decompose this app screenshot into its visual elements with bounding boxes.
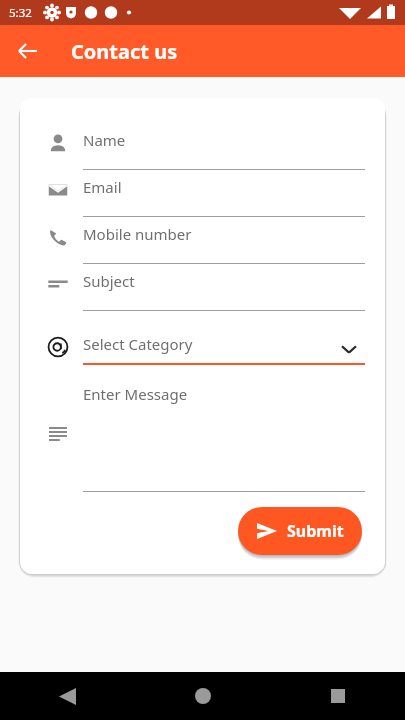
staticText: Contact us xyxy=(71,38,178,65)
other: Expand category xyxy=(340,340,358,358)
staticText: Name xyxy=(83,130,126,150)
button[interactable]: Select Category xyxy=(20,334,385,371)
staticText: Submit xyxy=(287,520,344,542)
button[interactable]: Email xyxy=(20,177,385,224)
button[interactable]: Name xyxy=(20,130,385,177)
staticText: Enter Message xyxy=(83,384,188,404)
staticText: Subject xyxy=(83,271,135,291)
staticText: Select Category xyxy=(83,334,193,354)
button[interactable]: Home xyxy=(135,672,270,720)
staticText: 5:32 xyxy=(9,5,32,21)
button[interactable]: Subject xyxy=(20,271,385,318)
button[interactable]: Submit xyxy=(238,507,362,555)
button[interactable]: Back xyxy=(8,31,48,71)
staticText: Email xyxy=(83,177,122,197)
button[interactable]: Recent apps xyxy=(270,672,405,720)
staticText: Mobile number xyxy=(83,224,192,244)
button[interactable]: Mobile number xyxy=(20,224,385,271)
button[interactable]: Back xyxy=(0,672,135,720)
